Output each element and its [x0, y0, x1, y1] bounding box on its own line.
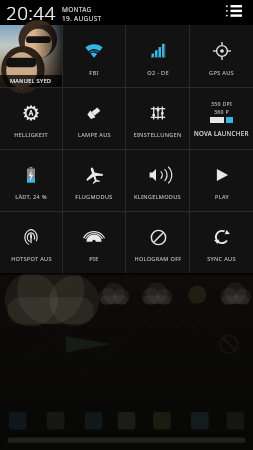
- button[interactable]: Einstellungen Liste: [223, 2, 245, 24]
- staticText: SYNC AUS: [207, 255, 236, 263]
- staticText: 19. AUGUST: [62, 14, 102, 23]
- button[interactable]: GPS: [190, 25, 253, 87]
- staticText: HELLIGKEIT: [14, 131, 48, 139]
- button[interactable]: Flugmodus: [63, 150, 125, 211]
- staticText: NOVA LAUNCHER: [194, 129, 249, 137]
- staticText: PIE: [89, 255, 99, 263]
- button[interactable]: Taschenlampe: [63, 88, 125, 149]
- staticText: PLAY: [215, 193, 229, 201]
- staticText: FLUGMODUS: [75, 193, 113, 201]
- button[interactable]: Klingelmodus: [126, 150, 189, 211]
- button[interactable]: Helligkeit: [0, 88, 62, 149]
- button[interactable]: Nova Launcher DPI: [190, 88, 253, 149]
- staticText: FBI: [89, 69, 99, 77]
- staticText: KLINGELMODUS: [134, 193, 181, 201]
- staticText: LAMPE AUS: [78, 131, 111, 139]
- button[interactable]: Sync: [190, 212, 253, 273]
- staticText: GPS AUS: [209, 69, 234, 77]
- staticText: 20:44: [6, 0, 56, 25]
- button[interactable]: Play: [190, 150, 253, 211]
- staticText: O2 - DE: [147, 69, 169, 77]
- staticText: EINSTELLUNGEN: [133, 131, 182, 139]
- button[interactable]: Nutzer Manuel Syed: [0, 25, 62, 87]
- staticText: MANUEL SYED: [10, 77, 52, 85]
- button[interactable]: Pie: [63, 212, 125, 273]
- staticText: 350 DPI: [211, 100, 233, 107]
- button[interactable]: Mobilfunk: [126, 25, 189, 87]
- button[interactable]: Hotspot: [0, 212, 62, 273]
- staticText: MONTAG: [62, 5, 92, 14]
- staticText: HOLOGRAM OFF: [134, 255, 182, 263]
- staticText: 360 P: [214, 108, 229, 115]
- button[interactable]: Hologram: [126, 212, 189, 273]
- button[interactable]: WLAN: [63, 25, 125, 87]
- staticText: HOTSPOT AUS: [11, 255, 52, 263]
- button[interactable]: Akku: [0, 150, 62, 211]
- button[interactable]: Einstellungen: [126, 88, 189, 149]
- staticText: LÄDT, 24 %: [15, 193, 47, 201]
